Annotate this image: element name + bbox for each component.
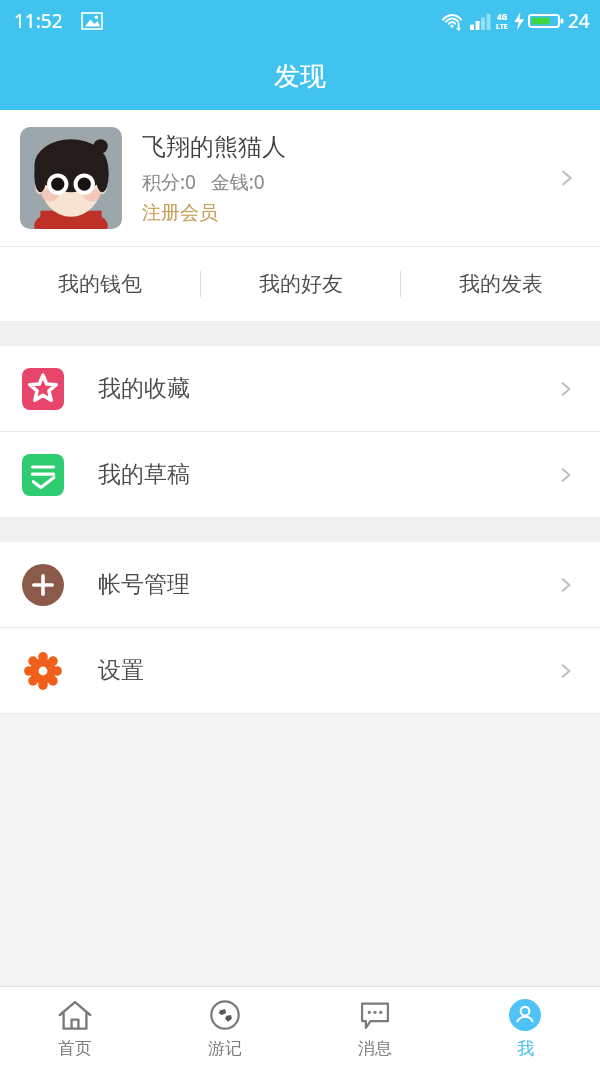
staticText: 首页	[58, 1038, 92, 1059]
button[interactable]: 我的草稿	[0, 432, 600, 517]
staticText: 注册会员	[142, 201, 218, 225]
button[interactable]: 消息	[300, 987, 450, 1067]
button[interactable]: 我	[450, 987, 600, 1067]
staticText: 游记	[208, 1038, 242, 1059]
staticText: 我的钱包	[58, 271, 142, 297]
staticText: 11:52	[14, 8, 63, 34]
staticText: 我的发表	[459, 271, 543, 297]
button[interactable]: 帐号管理	[0, 542, 600, 627]
staticText: 24	[568, 8, 590, 34]
staticText: 帐号管理	[98, 570, 554, 599]
staticText: 飞翔的熊猫人	[142, 132, 286, 162]
staticText: LTE	[496, 22, 508, 32]
button[interactable]: 首页	[0, 987, 150, 1067]
button[interactable]: 我的钱包	[0, 247, 200, 321]
button[interactable]: 我的收藏	[0, 346, 600, 431]
staticText: 设置	[98, 656, 554, 685]
staticText: 积分:0 金钱:0	[142, 169, 265, 195]
button[interactable]: 我的好友	[201, 247, 400, 321]
button[interactable]: 游记	[150, 987, 300, 1067]
staticText: 我的草稿	[98, 460, 554, 489]
staticText: 我	[517, 1038, 534, 1059]
button[interactable]: 我的发表	[401, 247, 600, 321]
staticText: 发现	[274, 60, 326, 93]
staticText: 4G	[497, 11, 508, 22]
staticText: 消息	[358, 1038, 392, 1059]
button[interactable]: 飞翔的熊猫人	[0, 110, 600, 246]
staticText: 我的好友	[259, 271, 343, 297]
staticText: 我的收藏	[98, 374, 554, 403]
button[interactable]: 设置	[0, 628, 600, 713]
